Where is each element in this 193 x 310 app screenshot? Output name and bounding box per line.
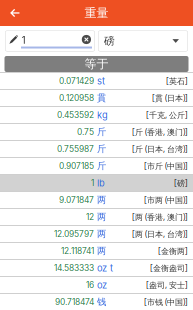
staticText: 两 [97, 194, 106, 206]
staticText: 16 [86, 280, 94, 290]
staticText: 等于 [84, 57, 108, 71]
staticText: [英石] [166, 76, 188, 86]
button[interactable]: 12 [0, 209, 193, 225]
staticText: [千克, 公斤] [146, 110, 188, 120]
staticText: 90.718474 [55, 297, 94, 307]
button[interactable]: 0.453592 [0, 107, 193, 123]
staticText: oz [97, 279, 107, 291]
staticText: kg [97, 109, 108, 121]
button[interactable]: 12.118741 [0, 243, 193, 259]
staticText: st [97, 75, 105, 87]
staticText: 两 [97, 228, 106, 240]
button[interactable]: Back [0, 0, 30, 26]
staticText: 12 [86, 212, 94, 222]
button[interactable]: 90.718474 [0, 294, 193, 310]
button[interactable]: 14.583333 [0, 260, 193, 276]
staticText: 重量 [84, 6, 108, 20]
button[interactable]: 0.071429 [0, 73, 193, 89]
staticText: 9.071847 [59, 195, 94, 205]
button[interactable]: 9.071847 [0, 192, 193, 208]
staticText: [市钱 (中国)] [144, 297, 188, 307]
button[interactable]: 0.907185 [0, 158, 193, 174]
staticText: [市斤 (中国)] [144, 161, 188, 171]
staticText: 12.095797 [54, 229, 94, 239]
staticText: 0.75 [77, 127, 94, 137]
staticText: [磅] [174, 178, 188, 188]
button[interactable]: 0.755987 [0, 141, 193, 157]
staticText: [貫 (日本)] [152, 93, 188, 103]
staticText: 磅 [104, 34, 115, 47]
staticText: 斤 [97, 160, 106, 172]
staticText: 钱 [97, 296, 106, 308]
button[interactable]: 等于 [4, 56, 188, 72]
button[interactable]: 12.095797 [0, 226, 193, 242]
staticText: 貫 [97, 92, 106, 104]
button[interactable]: 0.75 [0, 124, 193, 140]
button[interactable]: 磅 [98, 30, 188, 51]
staticText: [盎司, 安士] [146, 280, 188, 290]
staticText: 0.453592 [57, 110, 94, 120]
staticText: 1 [91, 178, 94, 188]
staticText: [金衡盎司] [150, 263, 188, 273]
button[interactable]: 0.120958 [0, 90, 193, 106]
staticText: 14.583333 [54, 263, 94, 273]
button[interactable]: 1 [5, 30, 95, 51]
staticText: 0.120958 [59, 93, 94, 103]
staticText: [两 (日本, 台湾)] [132, 229, 188, 239]
staticText: 斤 [97, 126, 106, 138]
staticText: 两 [97, 245, 106, 257]
staticText: [金衡两] [158, 246, 188, 256]
staticText: lb [97, 177, 105, 189]
staticText: 斤 [97, 143, 106, 155]
staticText: 12.118741 [61, 246, 94, 256]
staticText: 0.755987 [57, 144, 94, 154]
staticText: [斤 (香港, 澳门)] [132, 127, 188, 137]
staticText: 1 [21, 32, 27, 47]
staticText: [市两 (中国)] [144, 195, 188, 205]
staticText: oz t [97, 262, 113, 274]
staticText: 0.907185 [59, 161, 94, 171]
staticText: [两 (香港, 澳门)] [132, 212, 188, 222]
button[interactable]: 16 [0, 277, 193, 293]
staticText: 两 [97, 211, 106, 223]
staticText: [斤 (日本, 台湾)] [132, 144, 188, 154]
button[interactable]: 1 [0, 175, 193, 191]
staticText: 0.071429 [59, 76, 94, 86]
